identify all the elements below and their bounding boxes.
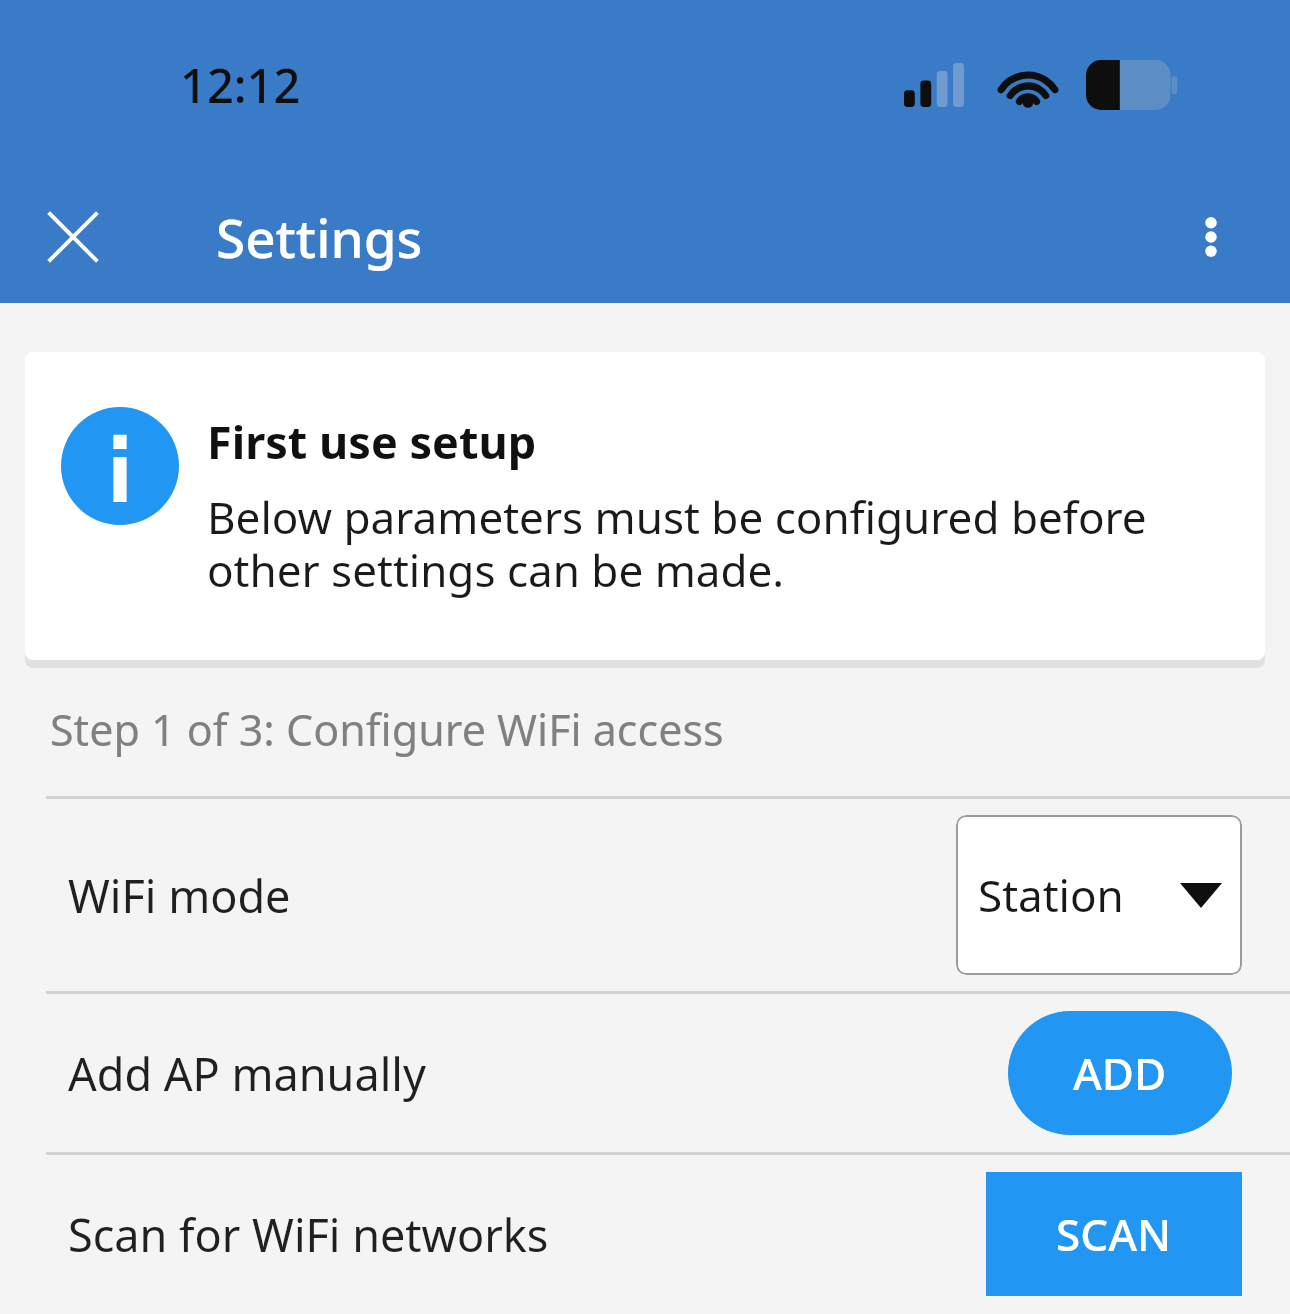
staticText: Scan for WiFi networks <box>68 1204 549 1265</box>
staticText: Add AP manually <box>68 1043 426 1104</box>
button[interactable]: Station <box>956 815 1242 975</box>
button[interactable]: Scan for WiFi networks <box>0 1155 1290 1313</box>
staticText: Settings <box>216 201 423 273</box>
button[interactable]: ADD <box>1008 1011 1232 1135</box>
staticText: 12:12 <box>180 53 301 117</box>
button[interactable]: Close <box>32 196 114 278</box>
staticText: First use setup <box>207 411 537 472</box>
staticText: WiFi mode <box>68 865 291 926</box>
staticText: Step 1 of 3: Configure WiFi access <box>50 700 724 759</box>
staticText: ADD <box>1073 1043 1167 1103</box>
button[interactable]: SCAN <box>986 1172 1242 1296</box>
button[interactable]: WiFi mode <box>0 799 1290 991</box>
button[interactable]: Add AP manually <box>0 994 1290 1152</box>
staticText: Below parameters must be configured befo… <box>207 487 1231 599</box>
staticText: Station <box>978 865 1126 925</box>
button[interactable]: More options <box>1168 194 1254 280</box>
staticText: SCAN <box>1056 1204 1172 1264</box>
